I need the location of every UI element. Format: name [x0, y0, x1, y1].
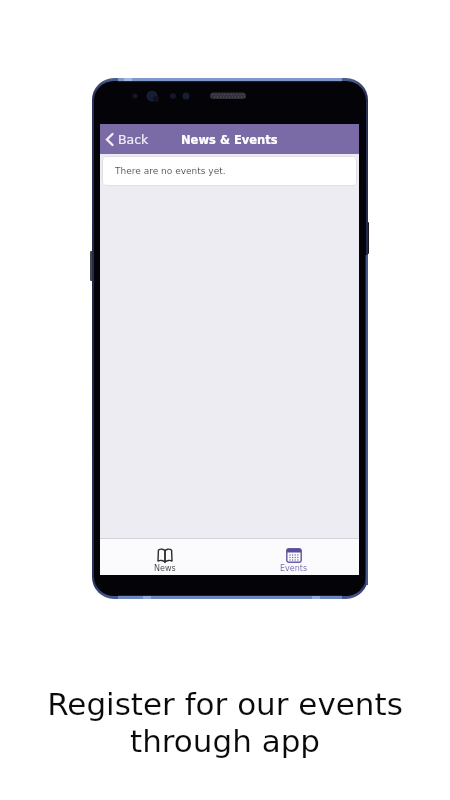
staticText: Register for our events through app: [0, 686, 450, 759]
staticText: There are no events yet.: [115, 166, 226, 176]
staticText: News & Events: [181, 133, 278, 146]
staticText: News: [154, 564, 176, 573]
button[interactable]: There are no events yet.: [102, 156, 357, 186]
staticText: Events: [280, 564, 308, 573]
button[interactable]: Back: [105, 132, 149, 147]
staticText: Back: [118, 132, 149, 147]
button[interactable]: News: [100, 548, 229, 575]
button[interactable]: Events: [229, 548, 359, 575]
